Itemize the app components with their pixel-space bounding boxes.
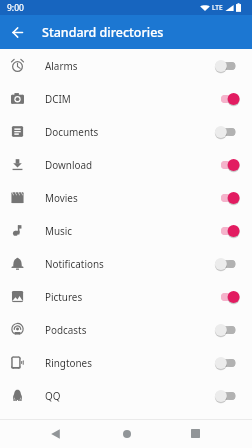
button[interactable]: Back: [5, 20, 30, 45]
button[interactable]: Download: [0, 148, 252, 181]
button[interactable]: Notifications: [0, 247, 252, 280]
staticText: Download: [45, 158, 93, 171]
staticText: Notifications: [45, 257, 104, 270]
staticText: Alarms: [45, 59, 78, 72]
staticText: Ringtones: [45, 356, 92, 369]
staticText: 9:00: [7, 2, 24, 14]
staticText: Podcasts: [45, 323, 87, 336]
staticText: Movies: [45, 191, 78, 204]
staticText: Music: [45, 224, 73, 237]
button[interactable]: DCIM: [0, 82, 252, 115]
staticText: Standard directories: [42, 24, 164, 41]
staticText: LTE: [212, 3, 223, 12]
button[interactable]: Documents: [0, 115, 252, 148]
button[interactable]: QQ: [0, 379, 252, 412]
button[interactable]: Ringtones: [0, 346, 252, 379]
button[interactable]: Music: [0, 214, 252, 247]
button[interactable]: Movies: [0, 181, 252, 214]
button[interactable]: Home: [113, 420, 140, 447]
button[interactable]: Pictures: [0, 280, 252, 313]
button[interactable]: Back: [42, 420, 69, 447]
staticText: QQ: [45, 389, 61, 402]
staticText: DCIM: [45, 92, 71, 105]
staticText: Pictures: [45, 290, 83, 303]
staticText: Documents: [45, 125, 99, 138]
button[interactable]: Recents: [182, 420, 209, 447]
button[interactable]: Podcasts: [0, 313, 252, 346]
button[interactable]: Alarms: [0, 49, 252, 82]
